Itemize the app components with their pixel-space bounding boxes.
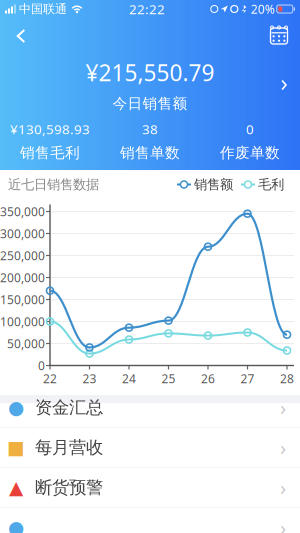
staticText: 22 bbox=[43, 370, 57, 386]
staticText: 每月营收 bbox=[35, 437, 103, 458]
staticText: 今日销售额 bbox=[112, 94, 187, 112]
staticText: › bbox=[280, 394, 286, 421]
button[interactable]: ■ bbox=[0, 428, 300, 468]
staticText: 100,000 bbox=[0, 313, 45, 329]
button[interactable]: Calendar bbox=[261, 20, 297, 52]
staticText: 断货预警 bbox=[35, 477, 103, 498]
staticText: 22:22 bbox=[129, 0, 165, 18]
button[interactable]: Back bbox=[3, 20, 39, 52]
button[interactable]: ● bbox=[0, 388, 300, 428]
staticText: 50,000 bbox=[7, 335, 45, 351]
staticText: 150,000 bbox=[0, 291, 45, 307]
staticText: › bbox=[280, 434, 286, 461]
staticText: 28 bbox=[280, 370, 294, 386]
staticText: 销售单数 bbox=[120, 144, 180, 162]
button[interactable]: ● bbox=[0, 508, 300, 533]
button[interactable]: ¥215,550.79 bbox=[0, 60, 300, 110]
staticText: ¥215,550.79 bbox=[85, 57, 214, 87]
staticText: 中国联通 bbox=[19, 2, 67, 16]
staticText: 200,000 bbox=[0, 269, 45, 285]
staticText: 作废单数 bbox=[220, 144, 280, 162]
staticText: 销售毛利 bbox=[20, 144, 80, 162]
staticText: 近七日销售数据 bbox=[8, 176, 99, 193]
staticText: 23 bbox=[82, 370, 96, 386]
staticText: 0 bbox=[246, 120, 254, 138]
staticText: 24 bbox=[122, 370, 136, 386]
staticText: › bbox=[280, 514, 286, 533]
staticText: 38 bbox=[142, 120, 158, 138]
staticText: › bbox=[280, 474, 286, 501]
staticText: 20% bbox=[251, 1, 275, 17]
staticText: 毛利 bbox=[258, 176, 284, 193]
staticText: 0 bbox=[38, 357, 45, 373]
staticText: 25 bbox=[161, 370, 175, 386]
staticText: 资金汇总 bbox=[35, 397, 103, 418]
staticText: 350,000 bbox=[0, 203, 45, 219]
staticText: ■ bbox=[7, 437, 25, 458]
staticText: 27 bbox=[240, 370, 254, 386]
staticText: ▲ bbox=[9, 477, 23, 498]
staticText: ¥130,598.93 bbox=[10, 120, 90, 138]
staticText: 250,000 bbox=[0, 247, 45, 263]
staticText: ● bbox=[8, 517, 24, 533]
staticText: ● bbox=[8, 397, 24, 418]
staticText: 300,000 bbox=[0, 225, 45, 241]
button[interactable]: ▲ bbox=[0, 468, 300, 508]
staticText: 26 bbox=[201, 370, 215, 386]
staticText: 销售额 bbox=[194, 176, 233, 193]
